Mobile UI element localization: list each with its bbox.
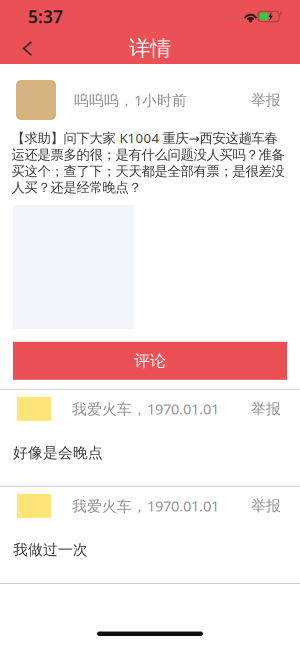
staticText: 我爱火车，1970.01.01 (72, 399, 219, 419)
button[interactable]: 举报 (245, 83, 287, 117)
staticText: 5:37 (28, 5, 63, 28)
staticText: 【求助】问下大家 K1004 重庆→西安这趟车春运还是票多的很；是有什么问题没人… (11, 129, 284, 196)
staticText: 评论 (134, 351, 166, 371)
staticText: 呜呜呜，1小时前 (74, 90, 187, 110)
staticText: 举报 (251, 91, 281, 109)
staticText: 我爱火车，1970.01.01 (72, 496, 219, 516)
button[interactable]: 举报 (245, 392, 287, 426)
staticText: 好像是会晚点 (13, 444, 103, 462)
staticText: 我做过一次 (13, 541, 88, 559)
button[interactable]: 举报 (245, 489, 287, 523)
staticText: 举报 (251, 497, 281, 515)
staticText: 举报 (251, 400, 281, 418)
staticText: 详情 (129, 35, 171, 62)
button[interactable]: 评论 (13, 342, 287, 380)
button[interactable]: Back (0, 32, 45, 64)
